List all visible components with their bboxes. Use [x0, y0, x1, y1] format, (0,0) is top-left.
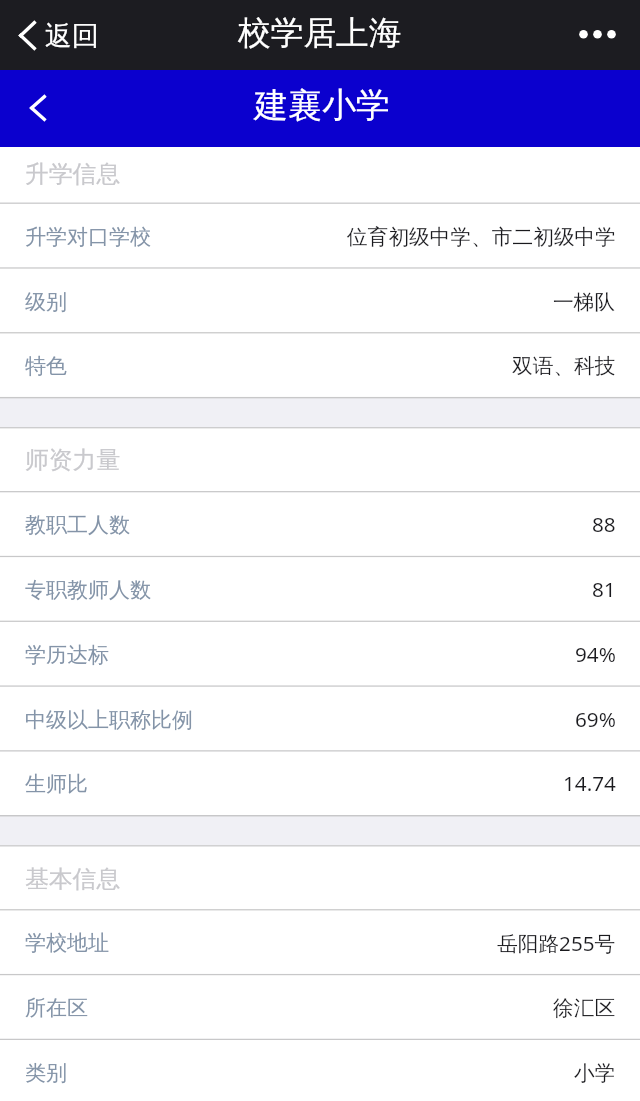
staticText: 专职教师人数: [25, 577, 151, 603]
button[interactable]: More options: [562, 10, 618, 60]
staticText: 岳阳路255号: [497, 929, 616, 957]
staticText: 生师比: [25, 771, 88, 797]
staticText: 小学: [574, 1060, 616, 1086]
staticText: 返回: [45, 19, 99, 53]
staticText: 建襄小学: [254, 84, 390, 127]
staticText: 基本信息: [25, 864, 121, 894]
button[interactable]: 升学对口学校: [0, 204, 640, 269]
staticText: 一梯队: [553, 289, 616, 315]
button[interactable]: 级别: [0, 269, 640, 334]
button[interactable]: 学校地址: [0, 910, 640, 975]
staticText: 94%: [575, 640, 616, 668]
staticText: 升学信息: [25, 159, 121, 189]
staticText: 双语、科技: [512, 353, 616, 379]
staticText: 69%: [575, 705, 616, 733]
staticText: 级别: [25, 289, 67, 315]
staticText: 位育初级中学、市二初级中学: [347, 224, 616, 250]
button[interactable]: 专职教师人数: [0, 557, 640, 622]
staticText: 教职工人数: [25, 512, 130, 538]
staticText: 81: [592, 575, 616, 603]
staticText: 中级以上职称比例: [25, 707, 193, 733]
staticText: 学校地址: [25, 930, 109, 956]
staticText: 升学对口学校: [25, 224, 151, 250]
staticText: 特色: [25, 353, 67, 379]
button[interactable]: 类别: [0, 1040, 640, 1101]
button[interactable]: Back: [0, 83, 66, 133]
staticText: 徐汇区: [553, 995, 616, 1021]
staticText: 所在区: [25, 995, 88, 1021]
button[interactable]: 学历达标: [0, 622, 640, 687]
staticText: 类别: [25, 1060, 67, 1086]
button[interactable]: 所在区: [0, 975, 640, 1040]
button[interactable]: 生师比: [0, 751, 640, 816]
button[interactable]: 特色: [0, 333, 640, 398]
staticText: 校学居上海: [238, 13, 402, 54]
staticText: 88: [592, 510, 616, 538]
staticText: 师资力量: [25, 445, 121, 475]
button[interactable]: 教职工人数: [0, 492, 640, 557]
staticText: 14.74: [563, 769, 616, 797]
staticText: 学历达标: [25, 642, 109, 668]
button[interactable]: 中级以上职称比例: [0, 687, 640, 752]
button[interactable]: 返回: [0, 13, 113, 57]
